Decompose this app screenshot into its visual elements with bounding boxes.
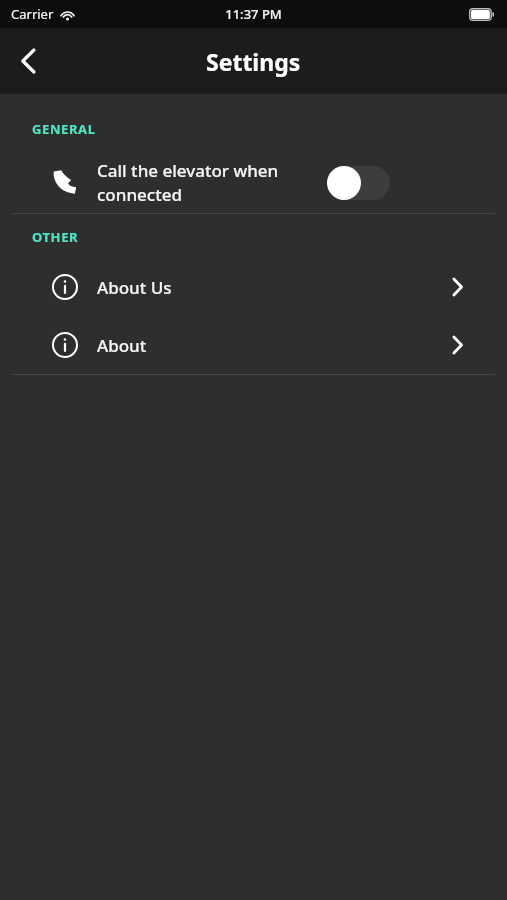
staticText: Settings — [206, 46, 301, 77]
staticText: About — [97, 334, 147, 357]
staticText: Carrier — [11, 5, 54, 23]
staticText: GENERAL — [32, 120, 96, 138]
staticText: 11:37 PM — [225, 5, 282, 23]
button[interactable]: About Us — [0, 258, 507, 316]
staticText: OTHER — [32, 228, 79, 246]
button[interactable]: About — [0, 316, 507, 374]
button[interactable]: Back — [0, 33, 56, 89]
button[interactable]: Call the elevator when connected toggle — [327, 165, 390, 200]
staticText: Call the elevator when connected — [97, 159, 327, 206]
button[interactable]: Call the elevator when connected — [0, 151, 507, 213]
staticText: About Us — [97, 276, 172, 299]
